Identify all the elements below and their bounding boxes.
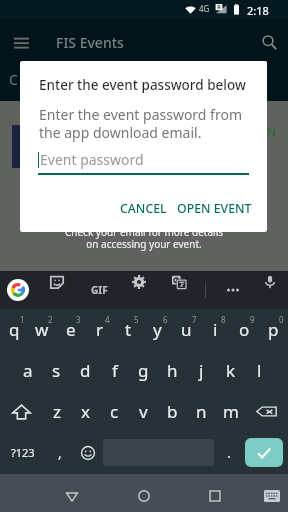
staticText: y xyxy=(153,318,162,341)
staticText: o xyxy=(239,318,250,341)
staticText: d xyxy=(80,359,91,382)
button[interactable]: GIF xyxy=(88,279,110,301)
staticText: OPEN EVENT xyxy=(177,200,252,217)
button[interactable]: More options xyxy=(222,279,244,301)
staticText: c xyxy=(110,400,119,423)
staticText: u xyxy=(181,318,192,341)
button[interactable]: q xyxy=(0,309,28,350)
button[interactable]: i xyxy=(201,309,230,350)
button[interactable]: a xyxy=(14,350,42,391)
staticText: x xyxy=(81,400,90,423)
button[interactable]: g xyxy=(129,350,158,391)
staticText: . xyxy=(227,443,231,462)
staticText: 0 xyxy=(279,314,284,325)
staticText: Check your email for more details on acc… xyxy=(0,225,288,251)
staticText: 4G xyxy=(199,3,210,14)
staticText: g xyxy=(138,359,149,382)
button[interactable]: b xyxy=(158,391,187,432)
button[interactable]: n xyxy=(187,391,216,432)
staticText: s xyxy=(52,359,61,382)
button[interactable]: d xyxy=(71,350,100,391)
button[interactable]: Stickers xyxy=(46,271,68,293)
button[interactable]: Backspace xyxy=(245,391,288,432)
staticText: q xyxy=(9,318,20,341)
staticText: h xyxy=(167,359,178,382)
staticText: FIS Events xyxy=(56,33,124,52)
staticText: j xyxy=(199,359,204,382)
staticText: Event password xyxy=(40,150,144,169)
button[interactable]: u xyxy=(172,309,201,350)
staticText: CANCEL xyxy=(120,200,167,217)
staticText: b xyxy=(167,400,178,423)
staticText: z xyxy=(53,400,61,423)
staticText: C xyxy=(9,70,18,89)
staticText: k xyxy=(226,359,236,382)
button[interactable]: o xyxy=(230,309,259,350)
button[interactable]: c xyxy=(100,391,129,432)
button[interactable]: x xyxy=(71,391,100,432)
button[interactable]: Emoji xyxy=(74,432,102,473)
staticText: m xyxy=(223,400,239,423)
staticText: 7 xyxy=(192,314,197,325)
button[interactable]: Show keyboard xyxy=(257,481,287,511)
button[interactable]: Back xyxy=(57,481,87,511)
button[interactable]: s xyxy=(42,350,71,391)
button[interactable]: Shift xyxy=(0,391,43,432)
staticText: 4 xyxy=(105,314,110,325)
button[interactable]: t xyxy=(114,309,143,350)
staticText: 9 xyxy=(250,314,255,325)
button[interactable]: w xyxy=(28,309,56,350)
button[interactable]: l xyxy=(245,350,274,391)
button[interactable]: ?123 xyxy=(0,432,46,473)
staticText: w xyxy=(35,318,49,341)
staticText: p xyxy=(268,318,279,341)
button[interactable]: Enter xyxy=(245,438,283,467)
staticText: n xyxy=(196,400,207,423)
button[interactable]: h xyxy=(158,350,187,391)
button[interactable]: j xyxy=(187,350,216,391)
button[interactable]: e xyxy=(56,309,85,350)
button[interactable]: Home xyxy=(129,481,159,511)
staticText: GIF xyxy=(91,283,108,297)
button[interactable]: Search xyxy=(256,29,282,55)
staticText: i xyxy=(213,318,218,341)
button[interactable]: k xyxy=(216,350,245,391)
staticText: 1 xyxy=(20,314,25,325)
staticText: e xyxy=(66,318,76,341)
button[interactable]: v xyxy=(129,391,158,432)
button[interactable]: , xyxy=(46,432,74,473)
staticText: r xyxy=(96,318,104,341)
staticText: ?123 xyxy=(11,445,35,460)
button[interactable]: z xyxy=(43,391,71,432)
button[interactable]: Settings xyxy=(128,271,150,293)
button[interactable]: Google xyxy=(7,279,29,301)
staticText: 6 xyxy=(163,314,168,325)
button[interactable]: . xyxy=(215,432,243,473)
button[interactable]: Recent apps xyxy=(200,481,230,511)
button[interactable]: Translate xyxy=(168,271,190,293)
staticText: v xyxy=(139,400,148,423)
staticText: N xyxy=(267,124,277,140)
button[interactable]: f xyxy=(100,350,129,391)
staticText: 2 xyxy=(48,314,53,325)
button[interactable]: CANCEL xyxy=(112,191,175,226)
button[interactable]: r xyxy=(85,309,114,350)
staticText: 2:18 xyxy=(247,3,269,18)
staticText: a xyxy=(23,359,33,382)
staticText: 3 xyxy=(76,314,81,325)
staticText: Enter the event password from the app do… xyxy=(39,105,242,142)
button[interactable]: Voice input xyxy=(259,271,281,293)
button[interactable]: Open navigation drawer xyxy=(9,30,33,54)
staticText: t xyxy=(125,318,132,341)
staticText: 5 xyxy=(134,314,139,325)
button[interactable]: OPEN EVENT xyxy=(169,191,260,226)
staticText: Enter the event password below xyxy=(39,76,246,94)
button[interactable]: y xyxy=(143,309,172,350)
staticText: R xyxy=(217,3,221,11)
staticText: l xyxy=(257,359,262,382)
staticText: 8 xyxy=(221,314,226,325)
button[interactable]: m xyxy=(216,391,245,432)
button[interactable]: p xyxy=(259,309,288,350)
staticText: , xyxy=(58,443,62,462)
